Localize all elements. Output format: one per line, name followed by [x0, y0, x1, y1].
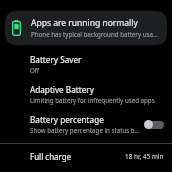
staticText: 18 hr, 45 min [125, 152, 164, 161]
staticText: Battery Saver [30, 54, 82, 65]
staticText: Phone has typical background battery usa… [31, 30, 159, 38]
staticText: Apps are running normally [31, 17, 138, 29]
button[interactable]: Battery Saver [0, 53, 172, 75]
staticText: Off [30, 66, 40, 74]
button[interactable]: Battery status [5, 11, 167, 45]
button[interactable]: Battery percentage [0, 112, 172, 137]
staticText: Full charge lasts about [30, 151, 77, 162]
staticText: Show battery percentage in status bar [30, 126, 140, 134]
other: Battery status [12, 20, 21, 36]
staticText: Adaptive Battery [30, 84, 94, 95]
staticText: Limiting battery for infrequently used a… [30, 96, 155, 104]
staticText: Battery percentage [30, 114, 104, 125]
button[interactable]: Battery percentage toggle [144, 119, 164, 130]
button[interactable]: Adaptive Battery [0, 83, 172, 105]
button[interactable]: Full charge lasts about [0, 151, 172, 162]
